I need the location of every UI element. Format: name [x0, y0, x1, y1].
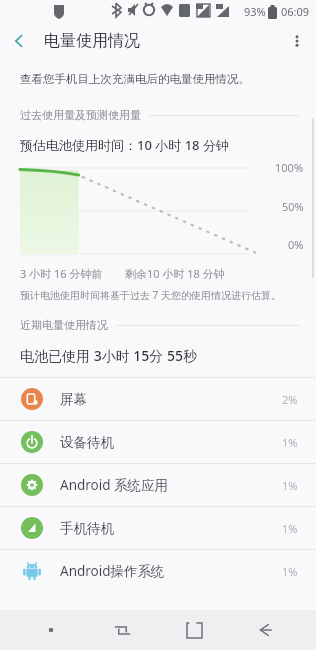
staticText: 预估电池使用时间：10 小时 18 分钟: [20, 136, 229, 154]
button[interactable]: Back: [245, 610, 285, 650]
staticText: 预计电池使用时间将基于过去 7 天您的使用情况进行估算。: [20, 288, 281, 302]
staticText: 1%: [282, 521, 298, 536]
staticText: 100%: [275, 160, 304, 175]
staticText: 1%: [282, 478, 298, 493]
staticText: Android操作系统: [60, 562, 282, 580]
staticText: 1%: [282, 435, 298, 450]
button[interactable]: Home: [174, 610, 214, 650]
staticText: 电量使用情况: [44, 31, 140, 51]
staticText: 屏幕: [60, 391, 282, 408]
button[interactable]: Recents: [102, 610, 142, 650]
staticText: 手机待机: [60, 520, 282, 537]
button[interactable]: 手机待机: [0, 507, 316, 549]
staticText: Android 系统应用: [60, 476, 282, 494]
button[interactable]: 屏幕: [0, 378, 316, 420]
button[interactable]: More options: [278, 22, 316, 60]
staticText: 近期电量使用情况: [20, 318, 108, 332]
staticText: 93%: [244, 4, 266, 19]
staticText: 查看您手机目上次充满电后的电量使用情况。: [20, 72, 250, 86]
staticText: 06:09: [281, 4, 310, 19]
staticText: 3 小时 16 分钟前: [20, 266, 103, 281]
staticText: 过去使用量及预测使用量: [20, 108, 141, 122]
staticText: 剩余10 小时 18 分钟: [125, 266, 225, 281]
staticText: 电池已使用 3小时 15分 55秒: [20, 346, 197, 365]
staticText: 2%: [282, 392, 298, 407]
staticText: 0%: [288, 237, 304, 252]
button[interactable]: Android 系统应用: [0, 464, 316, 506]
staticText: 设备待机: [60, 434, 282, 451]
button[interactable]: 设备待机: [0, 421, 316, 463]
staticText: 50%: [282, 199, 304, 214]
staticText: 1%: [282, 564, 298, 579]
button[interactable]: Android操作系统: [0, 550, 316, 592]
button[interactable]: Back: [0, 22, 38, 60]
button[interactable]: Menu: [31, 610, 71, 650]
